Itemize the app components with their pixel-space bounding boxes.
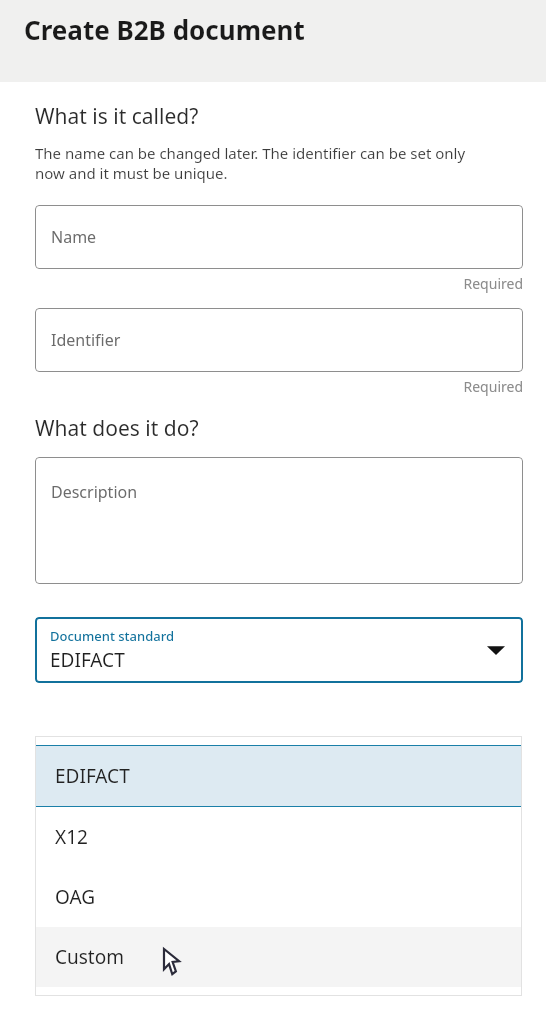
staticText: EDIFACT <box>55 763 130 789</box>
staticText: What is it called? <box>35 102 199 131</box>
button[interactable]: Document standard <box>35 617 523 683</box>
button[interactable]: Identifier <box>35 308 523 372</box>
staticText: X12 <box>55 824 88 850</box>
staticText: Description <box>51 481 138 503</box>
button[interactable]: OAG <box>35 867 522 927</box>
staticText: What does it do? <box>35 414 199 443</box>
staticText: Document standard <box>50 627 174 645</box>
staticText: Required <box>463 377 523 396</box>
staticText: Name <box>51 226 97 248</box>
button[interactable]: Name <box>35 205 523 269</box>
staticText: Identifier <box>51 329 121 351</box>
staticText: Required <box>463 274 523 293</box>
staticText: Create B2B document <box>24 12 305 47</box>
staticText: The name can be changed later. The ident… <box>35 143 466 183</box>
button[interactable]: EDIFACT <box>35 746 522 806</box>
staticText: OAG <box>55 884 96 910</box>
staticText: Custom <box>55 944 124 970</box>
staticText: EDIFACT <box>50 647 125 673</box>
button[interactable]: X12 <box>35 807 522 867</box>
button[interactable]: Description <box>35 457 523 584</box>
button[interactable]: Custom <box>35 927 522 987</box>
